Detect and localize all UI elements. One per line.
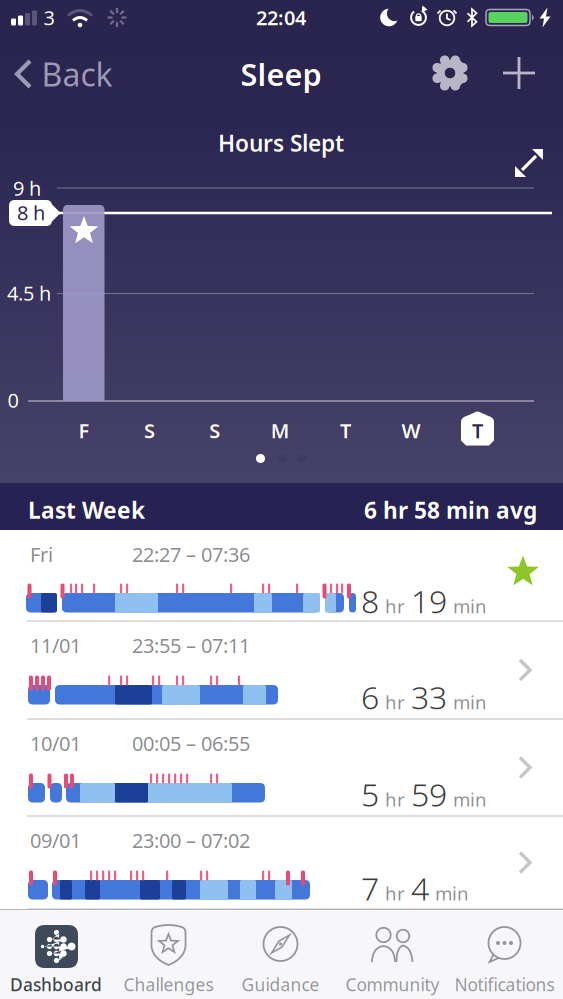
staticText: 4.5 h (7, 280, 51, 306)
staticText: Guidance (241, 973, 319, 996)
staticText: Hours Slept (218, 128, 344, 158)
staticText: Back (41, 53, 112, 95)
staticText: Notifications (454, 973, 554, 996)
staticText: Fri (30, 541, 53, 568)
staticText: 4 (411, 867, 429, 909)
staticText: 09/01 (30, 827, 81, 854)
staticText: 9 h (13, 175, 41, 201)
staticText: W (401, 417, 420, 444)
staticText: 00:05 – 06:55 (132, 730, 250, 757)
staticText: T (340, 417, 351, 444)
staticText: T (472, 417, 483, 444)
staticText: 23:55 – 07:11 (132, 632, 250, 659)
staticText: M (271, 417, 290, 444)
staticText: Community (345, 973, 439, 996)
staticText: min (453, 593, 487, 618)
staticText: S (209, 417, 220, 444)
staticText: 23:00 – 07:02 (132, 827, 250, 854)
staticText: 8 (361, 579, 379, 622)
staticText: hr (385, 690, 405, 714)
staticText: Last Week (28, 495, 145, 525)
staticText: 22:04 (256, 4, 306, 31)
staticText: min (435, 881, 469, 906)
staticText: hr (385, 593, 405, 618)
staticText: S (144, 417, 155, 444)
staticText: 22:27 – 07:36 (132, 541, 250, 568)
staticText: 6 (361, 676, 379, 718)
staticText: min (453, 787, 487, 812)
staticText: 3 (43, 4, 54, 31)
staticText: Sleep (240, 54, 321, 94)
staticText: 33 (411, 676, 447, 718)
staticText: 6 hr 58 min avg (364, 495, 537, 525)
staticText: Challenges (123, 973, 213, 996)
staticText: min (453, 690, 487, 714)
staticText: 7 (361, 867, 379, 909)
staticText: hr (385, 787, 405, 812)
staticText: 8 h (17, 199, 45, 226)
staticText: 5 (361, 773, 379, 815)
staticText: Dashboard (10, 973, 102, 996)
staticText: F (78, 417, 89, 444)
staticText: 11/01 (30, 632, 81, 659)
staticText: 10/01 (30, 730, 81, 757)
staticText: 59 (411, 773, 447, 815)
staticText: hr (385, 881, 405, 906)
staticText: 19 (411, 579, 447, 622)
staticText: 0 (7, 387, 18, 413)
